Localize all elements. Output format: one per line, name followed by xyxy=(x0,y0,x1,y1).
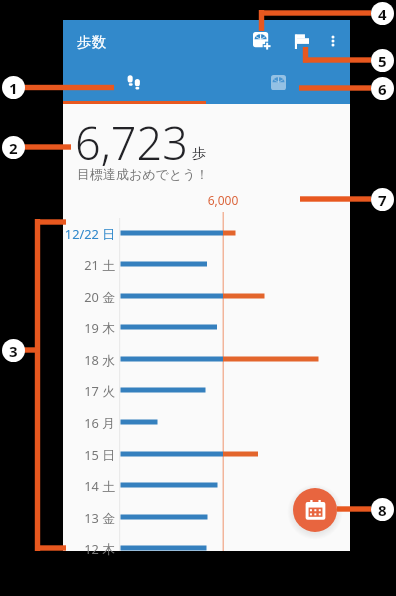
staticText: 目標達成おめでとう！ xyxy=(77,166,209,182)
button[interactable]: 15 日 xyxy=(63,438,350,470)
button[interactable]: Open calendar xyxy=(293,488,337,532)
staticText: 6,000 xyxy=(183,192,263,208)
button[interactable]: 21 土 xyxy=(63,248,350,280)
button[interactable]: Set goal xyxy=(285,25,317,57)
staticText: 4 xyxy=(378,4,387,24)
button[interactable]: More options xyxy=(319,27,347,55)
button[interactable]: 12 木 xyxy=(63,532,350,564)
staticText: 5 xyxy=(378,51,387,71)
staticText: 3 xyxy=(9,341,18,361)
button[interactable]: 12/22 日 xyxy=(63,217,350,249)
button[interactable]: 19 木 xyxy=(63,311,350,343)
button[interactable]: Weight tab xyxy=(206,63,350,101)
button[interactable]: 16 月 xyxy=(63,406,350,438)
staticText: 18 水 xyxy=(63,351,115,368)
staticText: 1 xyxy=(9,78,18,98)
button[interactable]: 14 土 xyxy=(63,469,350,501)
staticText: 13 金 xyxy=(63,509,115,526)
staticText: 12 木 xyxy=(63,540,115,557)
staticText: 15 日 xyxy=(63,446,115,463)
staticText: 17 火 xyxy=(63,382,115,399)
staticText: 16 月 xyxy=(63,414,115,431)
button[interactable]: Add weight xyxy=(245,24,279,58)
button[interactable]: 20 金 xyxy=(63,280,350,312)
staticText: 21 土 xyxy=(63,256,115,273)
button[interactable]: 17 火 xyxy=(63,374,350,406)
staticText: 歩 xyxy=(192,145,206,163)
staticText: 19 木 xyxy=(63,319,115,336)
staticText: 12/22 日 xyxy=(63,225,115,242)
staticText: 14 土 xyxy=(63,477,115,494)
staticText: 2 xyxy=(9,138,18,158)
staticText: 7 xyxy=(378,190,387,210)
staticText: 6,723 xyxy=(75,112,188,173)
button[interactable]: 13 金 xyxy=(63,501,350,533)
staticText: 歩数 xyxy=(77,33,106,51)
staticText: 20 金 xyxy=(63,288,115,305)
button[interactable]: Steps tab xyxy=(63,63,206,101)
button[interactable]: 18 水 xyxy=(63,343,350,375)
staticText: 6 xyxy=(378,79,387,99)
staticText: 8 xyxy=(378,500,387,520)
